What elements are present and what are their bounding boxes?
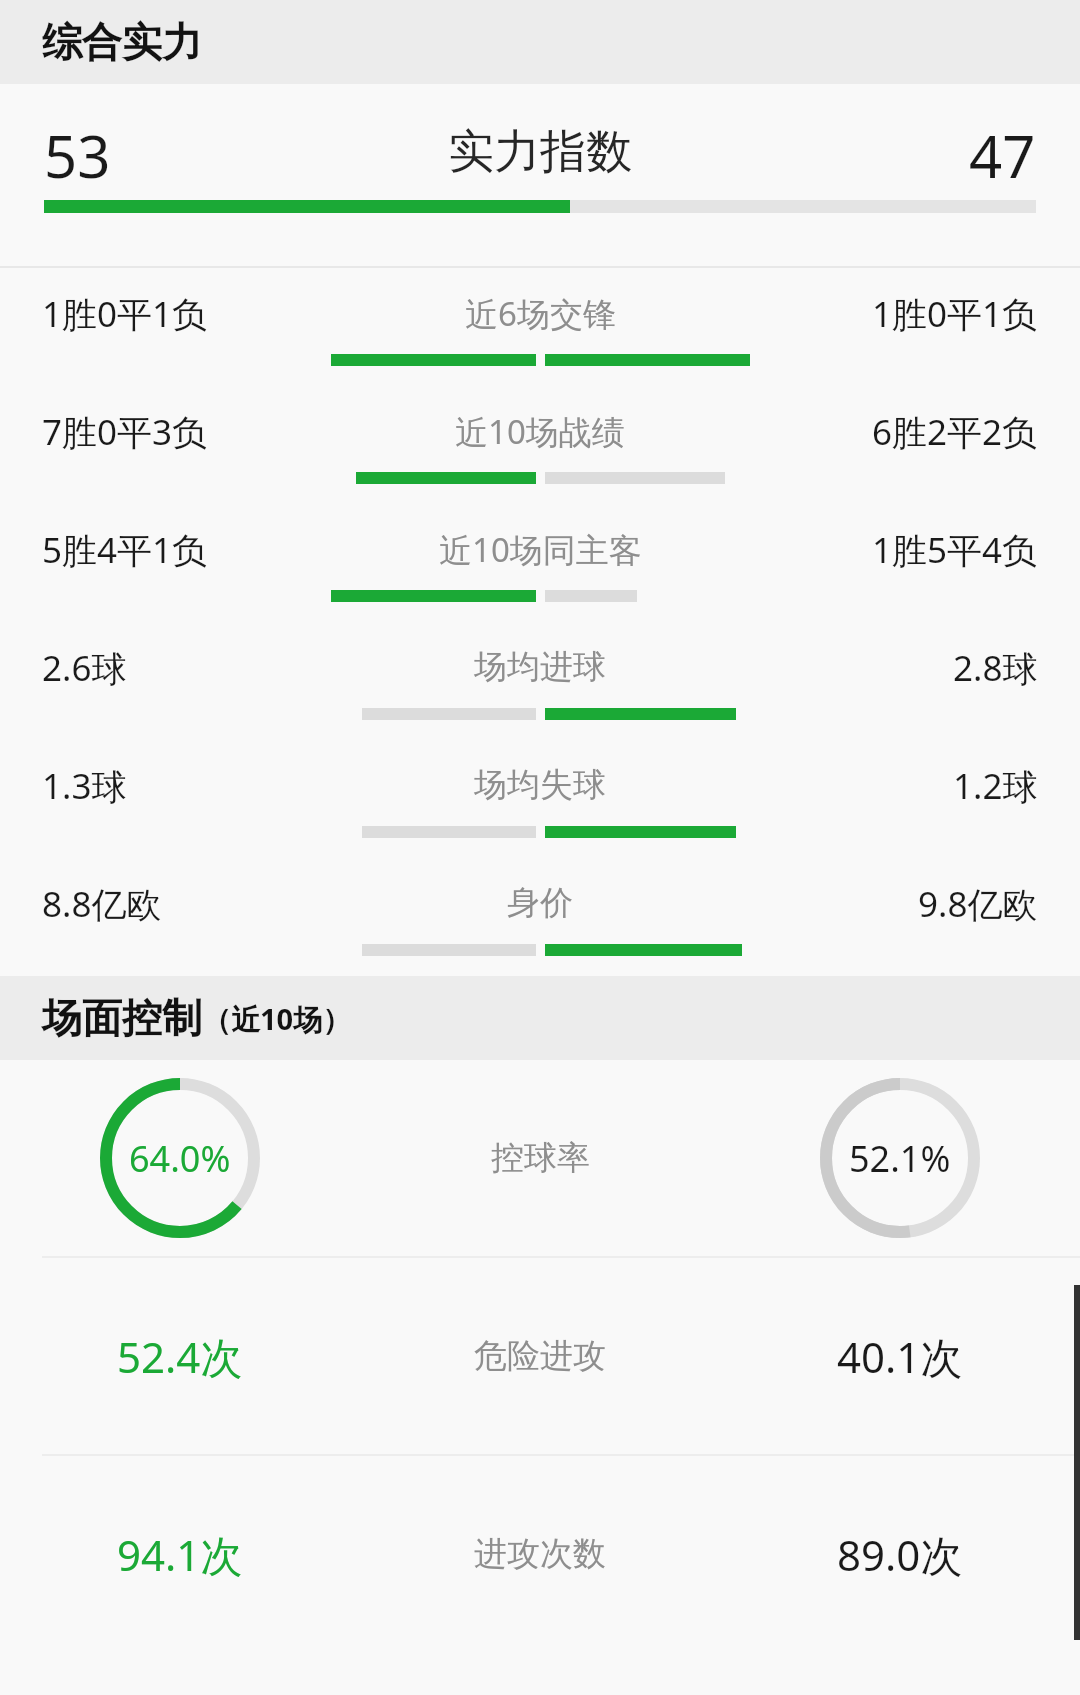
staticText: 场面控制 xyxy=(42,993,202,1043)
staticText: 53 xyxy=(44,116,111,188)
staticText: 52.4次 xyxy=(117,1328,243,1385)
staticText: 身价 xyxy=(507,882,573,924)
button[interactable]: 52.4次 xyxy=(0,1258,1080,1454)
button[interactable]: 7胜0平3负 xyxy=(0,386,1080,504)
staticText: 近6场交锋 xyxy=(465,291,616,336)
staticText: 危险进攻 xyxy=(474,1335,606,1377)
staticText: 实力指数 xyxy=(448,123,632,181)
staticText: 2.8球 xyxy=(953,644,1038,690)
staticText: 场均进球 xyxy=(474,646,606,688)
staticText: 47 xyxy=(969,116,1036,188)
button[interactable]: 1.3球 xyxy=(0,740,1080,858)
staticText: 2.6球 xyxy=(42,644,127,690)
staticText: 1胜0平1负 xyxy=(872,290,1038,336)
staticText: 9.8亿欧 xyxy=(918,880,1038,926)
staticText: 近10场同主客 xyxy=(439,527,642,572)
staticText: （近10场） xyxy=(202,999,352,1039)
staticText: 场均失球 xyxy=(474,764,606,806)
staticText: 近10场战绩 xyxy=(455,409,625,454)
other: Away possession 52.1 percent xyxy=(820,1078,980,1238)
staticText: 5胜4平1负 xyxy=(42,526,208,572)
button[interactable]: 1胜0平1负 xyxy=(0,268,1080,386)
other: Home possession 64.0 percent xyxy=(100,1078,260,1238)
button[interactable]: 综合实力 xyxy=(0,0,1080,84)
staticText: 进攻次数 xyxy=(474,1533,606,1575)
staticText: 89.0次 xyxy=(837,1526,963,1583)
staticText: 7胜0平3负 xyxy=(42,408,208,454)
staticText: 52.1% xyxy=(849,1134,951,1183)
staticText: 1.3球 xyxy=(42,762,127,808)
staticText: 94.1次 xyxy=(117,1526,243,1583)
staticText: 40.1次 xyxy=(837,1328,963,1385)
staticText: 8.8亿欧 xyxy=(42,880,162,926)
staticText: 1.2球 xyxy=(953,762,1038,808)
button[interactable]: Home possession 64.0 percent xyxy=(0,1060,1080,1256)
button[interactable]: 53 xyxy=(0,84,1080,266)
staticText: 1胜0平1负 xyxy=(42,290,208,336)
staticText: 1胜5平4负 xyxy=(872,526,1038,572)
button[interactable]: 8.8亿欧 xyxy=(0,858,1080,976)
button[interactable]: 5胜4平1负 xyxy=(0,504,1080,622)
staticText: 64.0% xyxy=(129,1134,231,1183)
button[interactable]: 场面控制 xyxy=(0,976,1080,1060)
button[interactable]: 2.6球 xyxy=(0,622,1080,740)
staticText: 控球率 xyxy=(491,1137,590,1179)
staticText: 6胜2平2负 xyxy=(872,408,1038,454)
staticText: 综合实力 xyxy=(42,17,202,67)
button[interactable]: 94.1次 xyxy=(0,1456,1080,1652)
